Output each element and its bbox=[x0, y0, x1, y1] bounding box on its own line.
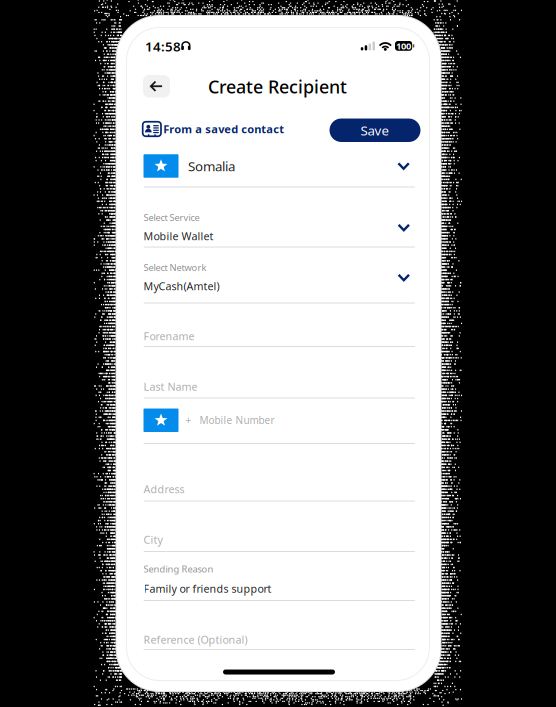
staticText: Save bbox=[360, 121, 389, 139]
button[interactable]: Somalia bbox=[143, 154, 415, 178]
staticText: 100 bbox=[396, 40, 411, 52]
button[interactable]: Save bbox=[329, 118, 420, 142]
staticText: Select Network bbox=[143, 261, 206, 274]
staticText: Sending Reason bbox=[143, 563, 213, 575]
button[interactable]: Back bbox=[143, 75, 170, 97]
staticText: City bbox=[143, 532, 162, 547]
staticText: Address bbox=[143, 482, 184, 496]
staticText: Create Recipient bbox=[208, 74, 347, 99]
button[interactable]: Last Name bbox=[143, 379, 415, 394]
staticText: Forename bbox=[143, 329, 194, 343]
button[interactable]: Reference (Optional) bbox=[143, 632, 415, 647]
staticText: Mobile Wallet bbox=[143, 229, 213, 243]
staticText: + bbox=[185, 413, 191, 427]
staticText: Somalia bbox=[188, 157, 235, 175]
staticText: 14:58 bbox=[145, 37, 181, 55]
staticText: From a saved contact bbox=[163, 121, 284, 137]
staticText: MyCash(Amtel) bbox=[143, 279, 219, 293]
button[interactable]: Forename bbox=[143, 328, 415, 343]
staticText: Family or friends support bbox=[143, 581, 271, 596]
button[interactable]: City bbox=[143, 532, 415, 547]
staticText: Last Name bbox=[143, 379, 197, 394]
button[interactable]: Address bbox=[143, 481, 415, 496]
staticText: Mobile Number bbox=[199, 413, 274, 427]
staticText: Select Service bbox=[143, 211, 199, 224]
staticText: Reference (Optional) bbox=[143, 632, 247, 647]
button[interactable]: From a saved contact bbox=[143, 121, 284, 137]
